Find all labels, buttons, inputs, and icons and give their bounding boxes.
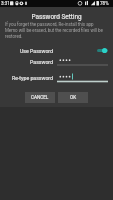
staticText: Password xyxy=(0,59,53,65)
button[interactable]: Use password toggle xyxy=(97,45,110,56)
staticText: 3:31 xyxy=(1,1,10,6)
staticText: CANCEL xyxy=(31,95,49,100)
staticText: Password Setting xyxy=(0,13,113,21)
button[interactable]: OK xyxy=(58,92,88,103)
button[interactable]: Re-type password xyxy=(0,75,113,87)
button[interactable]: Password xyxy=(0,59,113,71)
staticText: OK xyxy=(70,95,77,100)
button[interactable]: Use Password xyxy=(0,45,113,56)
button[interactable]: CANCEL xyxy=(25,92,55,103)
staticText: Use Password xyxy=(20,48,53,54)
staticText: 78% xyxy=(100,1,109,6)
staticText: Re-type password xyxy=(0,75,53,81)
staticText: If you forget the password, Re-install t… xyxy=(5,22,113,39)
